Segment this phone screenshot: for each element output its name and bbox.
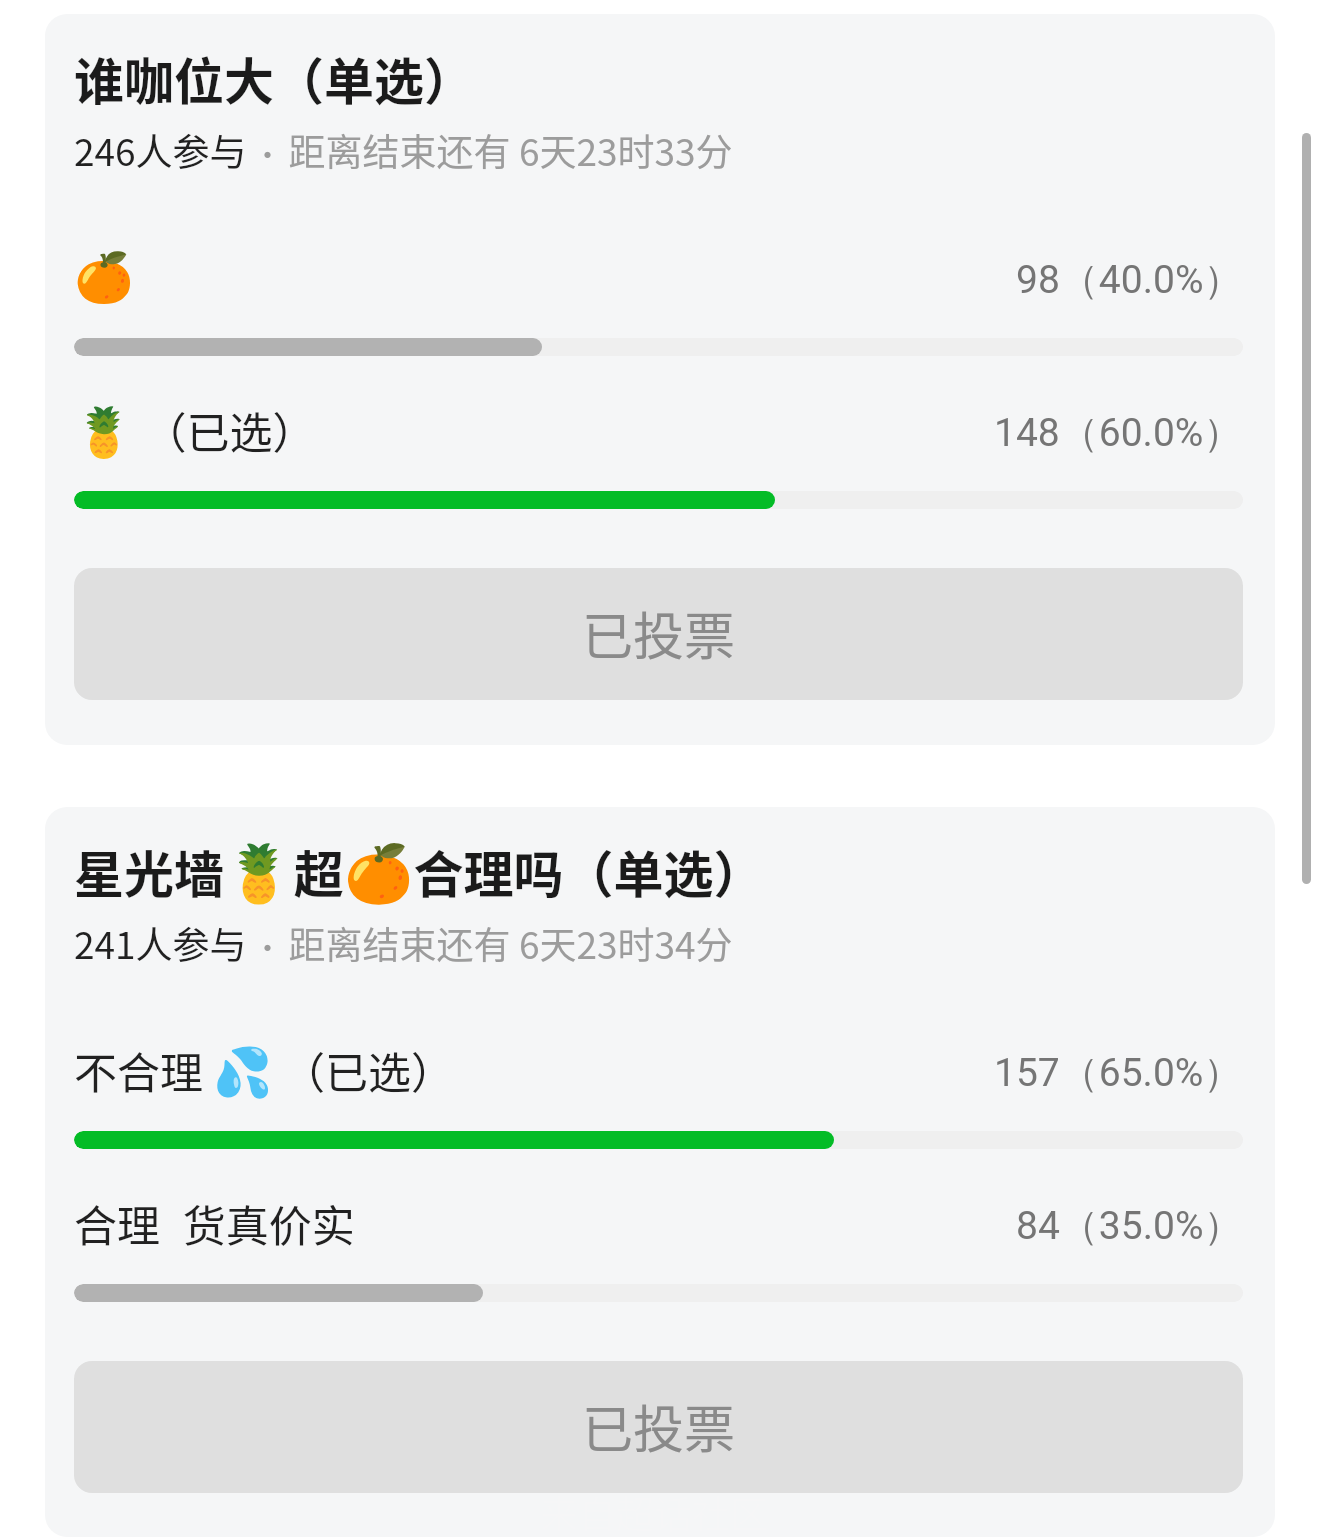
staticText: 241人参与 · 距离结束还有 6天23时34分 [74, 916, 733, 970]
staticText: 98（40.0%） [1016, 255, 1243, 304]
staticText: 157（65.0%） [994, 1048, 1243, 1097]
other: Scroll position indicator [1302, 133, 1311, 884]
staticText: 148（60.0%） [994, 408, 1243, 457]
staticText: 已投票 [582, 1389, 736, 1463]
staticText: 246人参与 · 距离结束还有 6天23时33分 [74, 123, 733, 177]
button[interactable]: 不合理 💦 （已选） [74, 1022, 1243, 1149]
staticText: 84（35.0%） [1016, 1201, 1243, 1250]
staticText: 来自超话社区 [540, 1484, 769, 1537]
staticText: 谁咖位大（单选） [74, 42, 474, 114]
staticText: 星光墙🍍超🍊合理吗（单选） [74, 835, 764, 907]
button[interactable]: 谁咖位大（单选） [45, 14, 1275, 745]
staticText: 不合理 💦 （已选） [74, 1039, 455, 1101]
button[interactable]: 🍊 [74, 229, 1243, 356]
button[interactable]: 🍍 （已选） [74, 382, 1243, 509]
button[interactable]: 已投票 [74, 1361, 1243, 1493]
staticText: 🍊 [74, 249, 134, 305]
button[interactable]: 已投票 [74, 568, 1243, 700]
staticText: 已投票 [582, 596, 736, 670]
staticText: 合理 货真价实 [74, 1192, 355, 1254]
button[interactable]: 合理 货真价实 [74, 1175, 1243, 1302]
staticText: 🍍 （已选） [74, 399, 316, 461]
button[interactable]: 星光墙🍍超🍊合理吗（单选） [45, 807, 1275, 1537]
